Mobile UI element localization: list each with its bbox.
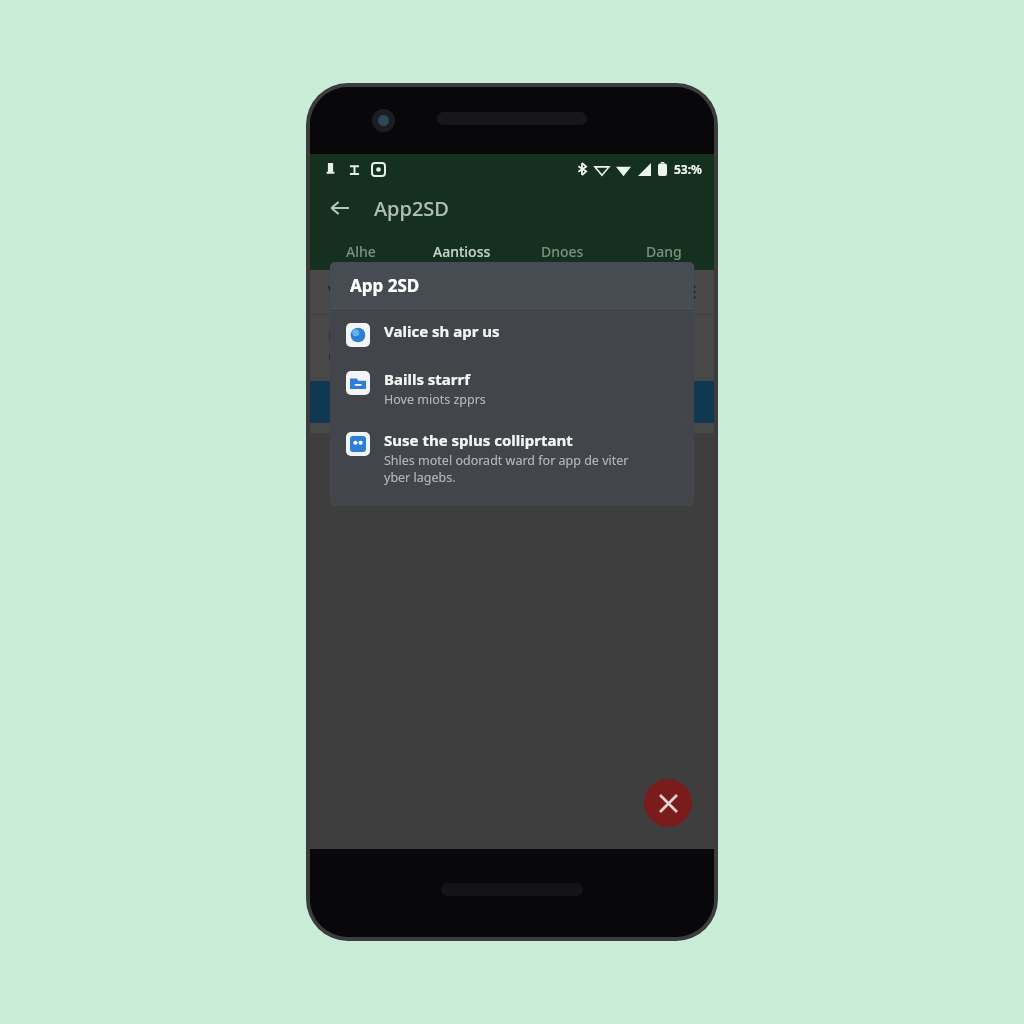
staticText: 53:% bbox=[674, 161, 702, 177]
button[interactable]: Valice sh apr us bbox=[330, 309, 694, 357]
button[interactable]: Suse the splus colliprtant bbox=[330, 418, 694, 496]
staticText: Aantioss bbox=[433, 242, 491, 261]
staticText: Hove miots zpprs bbox=[384, 391, 486, 408]
staticText: Suse the splus colliprtant bbox=[384, 430, 573, 450]
staticText: Alhe bbox=[346, 242, 376, 261]
staticText: Dnoes bbox=[541, 242, 584, 261]
button[interactable]: Aantioss bbox=[411, 232, 512, 270]
staticText: Baills starrf bbox=[384, 369, 471, 389]
button[interactable]: Baills starrf bbox=[330, 357, 694, 418]
staticText: Vaite a treaZad bbox=[328, 280, 674, 305]
button[interactable]: Close bbox=[644, 779, 692, 827]
staticText: Dang bbox=[646, 242, 682, 261]
button[interactable]: Dang bbox=[613, 232, 714, 270]
staticText: Valice sh apr us bbox=[384, 321, 500, 341]
button[interactable]: Vaite a treaZad bbox=[310, 270, 714, 314]
button[interactable]: More options bbox=[674, 272, 714, 312]
staticText: App 2SD bbox=[350, 274, 420, 297]
button[interactable]: Alhe bbox=[310, 232, 411, 270]
button[interactable]: Dnoes bbox=[512, 232, 613, 270]
staticText: App2SD bbox=[374, 195, 449, 222]
button[interactable]: Back bbox=[318, 187, 360, 229]
staticText: Shles motel odoradt ward for app de vite… bbox=[384, 452, 629, 486]
staticText: Pactos app sdid so founting gloar useado… bbox=[328, 325, 564, 367]
